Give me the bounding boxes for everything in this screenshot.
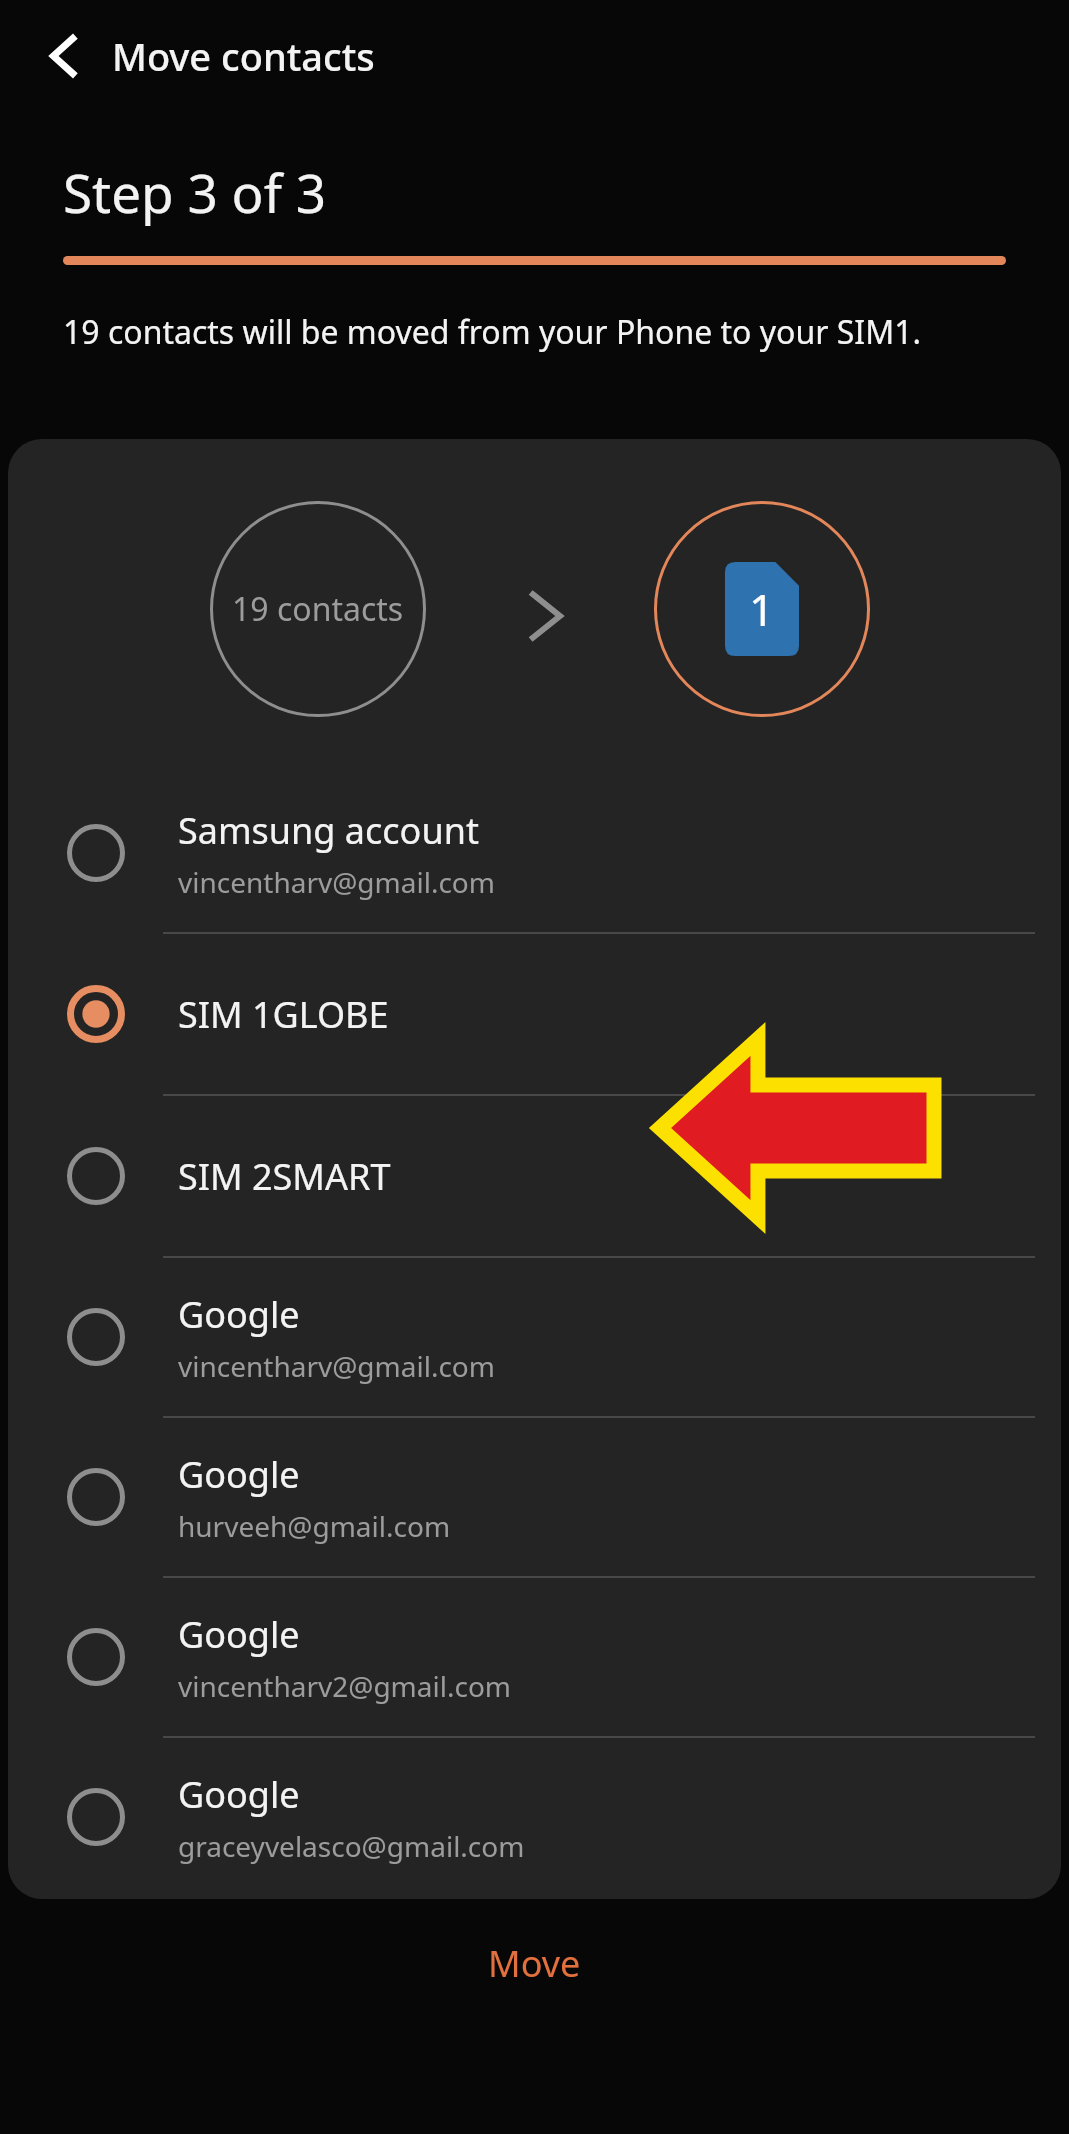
button[interactable]: Back (28, 20, 100, 92)
button[interactable]: Google (8, 1738, 1061, 1896)
staticText: vincentharv2@gmail.com (178, 1667, 512, 1705)
staticText: vincentharv@gmail.com (178, 863, 495, 901)
button[interactable]: Google (8, 1258, 1061, 1416)
staticText: Google (178, 1450, 300, 1499)
staticText: hurveeh@gmail.com (178, 1507, 451, 1545)
button[interactable]: SIM 2SMART (8, 1096, 1061, 1256)
button[interactable]: SIM 1GLOBE (8, 934, 1061, 1094)
button[interactable]: Google (8, 1418, 1061, 1576)
staticText: Move (488, 1939, 581, 1988)
button[interactable]: Samsung account (8, 774, 1061, 932)
staticText: 1 (749, 579, 775, 639)
staticText: Samsung account (178, 806, 479, 855)
staticText: vincentharv@gmail.com (178, 1347, 495, 1385)
staticText: Move contacts (112, 30, 375, 82)
button[interactable]: Google (8, 1578, 1061, 1736)
staticText: Step 3 of 3 (63, 156, 326, 228)
staticText: Google (178, 1290, 300, 1339)
button[interactable]: Move (0, 1899, 1069, 2028)
staticText: SIM 1GLOBE (178, 990, 389, 1039)
staticText: Google (178, 1610, 300, 1659)
staticText: Google (178, 1770, 300, 1819)
staticText: 19 contacts (232, 587, 404, 631)
staticText: 19 contacts will be moved from your Phon… (63, 310, 922, 354)
staticText: graceyvelasco@gmail.com (178, 1827, 525, 1865)
staticText: SIM 2SMART (178, 1152, 391, 1201)
